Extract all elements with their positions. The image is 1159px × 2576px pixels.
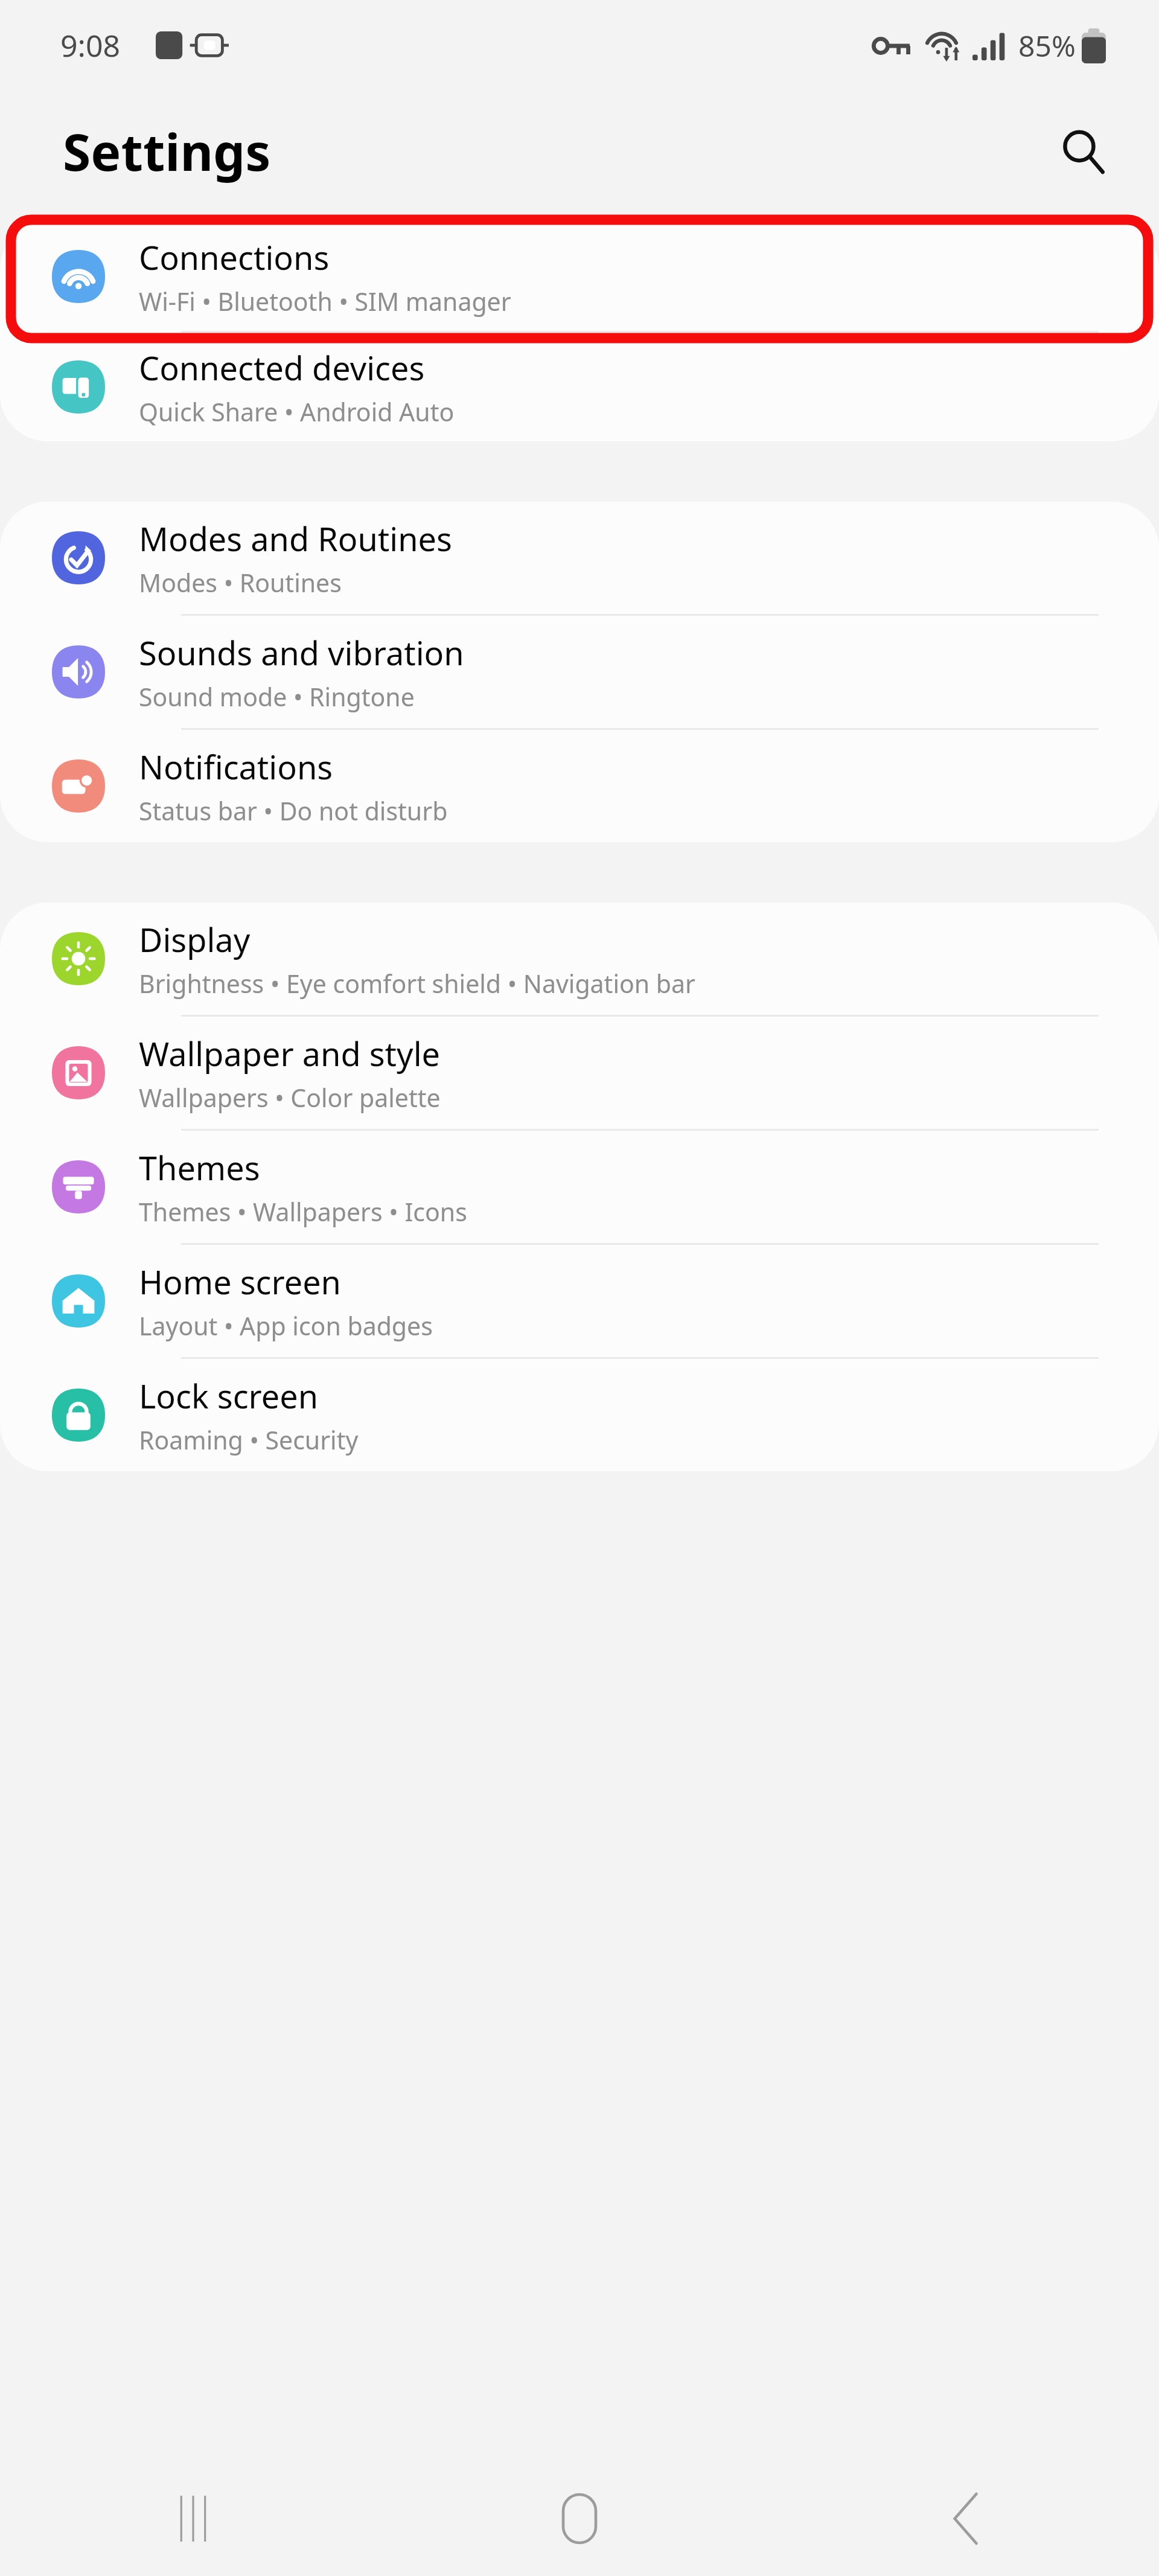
- staticText: Notifications: [139, 744, 333, 789]
- staticText: Wi-Fi • Bluetooth • SIM manager: [139, 284, 511, 318]
- staticText: Wallpaper and style: [139, 1031, 441, 1076]
- button[interactable]: Wallpaper and style: [0, 1017, 1159, 1129]
- staticText: Brightness • Eye comfort shield • Naviga…: [139, 967, 695, 1000]
- button[interactable]: Display: [0, 903, 1159, 1015]
- staticText: 85%: [1018, 26, 1076, 65]
- button[interactable]: Home: [386, 2461, 773, 2576]
- button[interactable]: Modes and Routines: [0, 502, 1159, 614]
- button[interactable]: Lock screen: [0, 1359, 1159, 1471]
- staticText: Status bar • Do not disturb: [139, 794, 448, 828]
- staticText: Display: [139, 917, 251, 962]
- staticText: Settings: [63, 117, 271, 185]
- staticText: Home screen: [139, 1259, 341, 1304]
- staticText: Connections: [139, 235, 330, 280]
- button[interactable]: Connections: [0, 222, 1159, 331]
- button[interactable]: Sounds and vibration: [0, 616, 1159, 728]
- button[interactable]: Back: [773, 2461, 1159, 2576]
- button[interactable]: Home screen: [0, 1245, 1159, 1357]
- staticText: Roaming • Security: [139, 1423, 359, 1457]
- staticText: Connected devices: [139, 345, 425, 390]
- staticText: Sound mode • Ringtone: [139, 680, 415, 714]
- staticText: 9:08: [60, 25, 121, 66]
- staticText: Layout • App icon badges: [139, 1309, 433, 1343]
- staticText: Modes • Routines: [139, 566, 342, 599]
- button[interactable]: Recent apps: [0, 2461, 386, 2576]
- button[interactable]: Connected devices: [0, 333, 1159, 441]
- button[interactable]: Themes: [0, 1131, 1159, 1243]
- staticText: Themes • Wallpapers • Icons: [139, 1195, 467, 1229]
- staticText: Lock screen: [139, 1373, 319, 1418]
- staticText: Wallpapers • Color palette: [139, 1081, 441, 1114]
- button[interactable]: Notifications: [0, 730, 1159, 842]
- button[interactable]: Search: [1041, 109, 1125, 193]
- staticText: Modes and Routines: [139, 516, 452, 561]
- staticText: Quick Share • Android Auto: [139, 395, 455, 429]
- staticText: Themes: [139, 1145, 260, 1190]
- staticText: Sounds and vibration: [139, 630, 464, 675]
